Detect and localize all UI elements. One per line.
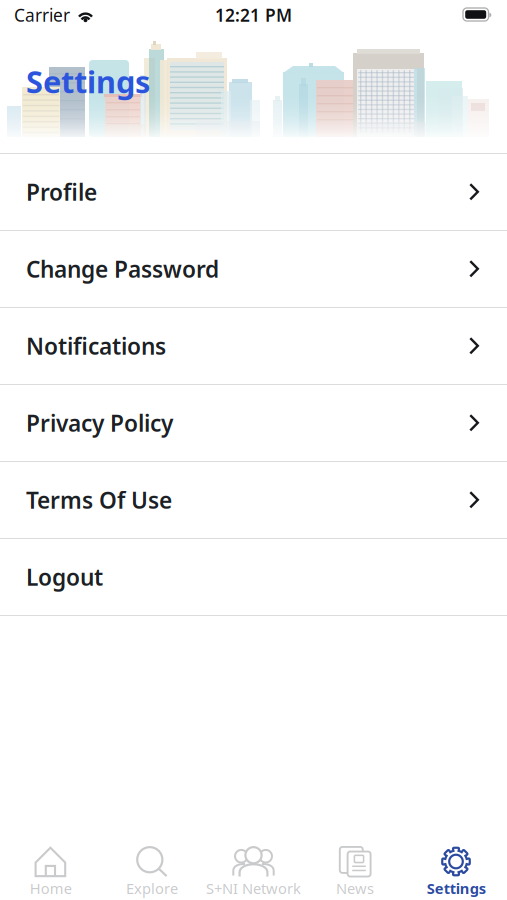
staticText: Logout bbox=[26, 562, 103, 592]
button[interactable]: S+NI Network bbox=[203, 845, 304, 898]
staticText: Profile bbox=[26, 177, 97, 207]
staticText: Settings bbox=[427, 878, 486, 898]
staticText: S+NI Network bbox=[206, 878, 301, 898]
button[interactable]: Home bbox=[0, 845, 101, 898]
button[interactable]: Change Password bbox=[0, 231, 507, 308]
button[interactable]: Explore bbox=[101, 845, 203, 898]
button[interactable]: Notifications bbox=[0, 308, 507, 385]
button[interactable]: Settings bbox=[406, 845, 507, 898]
staticText: Terms Of Use bbox=[26, 485, 172, 515]
staticText: Explore bbox=[126, 878, 178, 898]
staticText: News bbox=[336, 878, 374, 898]
staticText: Notifications bbox=[26, 331, 166, 361]
button[interactable]: Profile bbox=[0, 154, 507, 231]
button[interactable]: Logout bbox=[0, 539, 507, 616]
staticText: Settings bbox=[26, 61, 150, 102]
button[interactable]: Privacy Policy bbox=[0, 385, 507, 462]
button[interactable]: Terms Of Use bbox=[0, 462, 507, 539]
staticText: Carrier bbox=[14, 3, 70, 26]
staticText: Change Password bbox=[26, 254, 219, 284]
staticText: 12:21 PM bbox=[215, 3, 292, 26]
staticText: Home bbox=[30, 878, 72, 898]
staticText: Privacy Policy bbox=[26, 408, 173, 438]
button[interactable]: News bbox=[304, 845, 406, 898]
